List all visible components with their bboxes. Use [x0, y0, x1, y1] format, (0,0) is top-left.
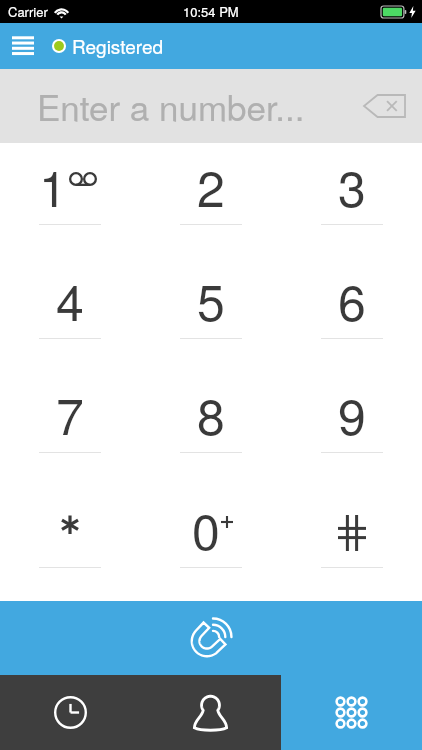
staticText: 10:54 PM [183, 2, 239, 21]
button[interactable]: Recents [0, 675, 140, 750]
staticText: 4 [56, 264, 84, 336]
button[interactable]: Menu [0, 23, 46, 69]
staticText: 1 [39, 150, 67, 222]
button[interactable]: 7 [0, 371, 140, 486]
button[interactable]: 3 [281, 143, 422, 257]
button[interactable]: Backspace [348, 69, 422, 143]
button[interactable]: 2 [140, 143, 281, 257]
button[interactable] [0, 486, 140, 601]
button[interactable]: 0 [140, 486, 281, 601]
staticText: 5 [197, 264, 225, 336]
button[interactable] [281, 486, 422, 601]
staticText: 9 [338, 378, 366, 450]
staticText: 3 [338, 150, 366, 222]
staticText: Carrier [8, 2, 48, 21]
staticText: 7 [56, 378, 84, 450]
button[interactable]: Contacts [140, 675, 281, 750]
button[interactable]: 6 [281, 257, 422, 371]
staticText: Enter a number... [37, 81, 305, 131]
staticText: 6 [338, 264, 366, 336]
button[interactable]: 4 [0, 257, 140, 371]
staticText: 0 [192, 493, 220, 565]
button[interactable]: 5 [140, 257, 281, 371]
button[interactable]: 1 [0, 143, 140, 257]
button[interactable]: Keypad [281, 675, 422, 750]
staticText: 2 [197, 150, 225, 222]
button[interactable]: 9 [281, 371, 422, 486]
button[interactable]: 8 [140, 371, 281, 486]
staticText: 8 [197, 378, 225, 450]
button[interactable]: Call [0, 601, 422, 675]
staticText: Registered [72, 32, 164, 59]
